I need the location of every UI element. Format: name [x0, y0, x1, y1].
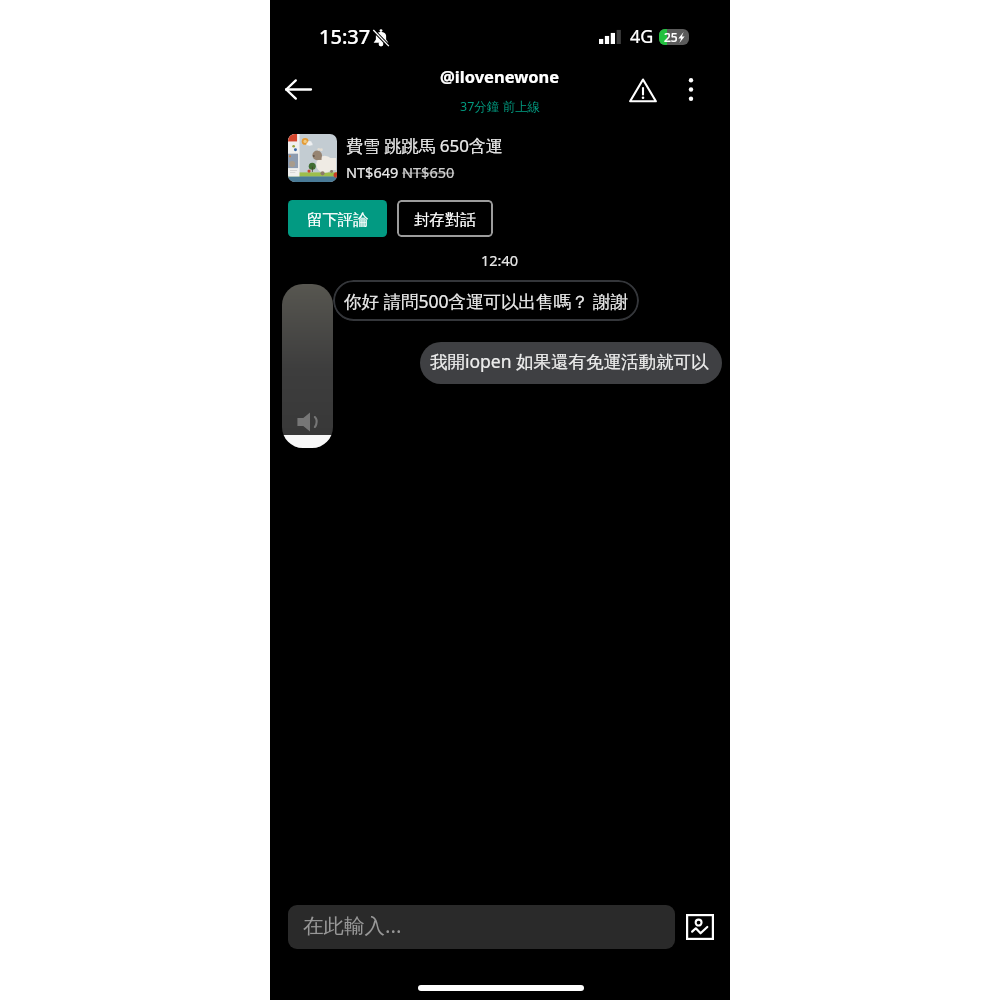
- button[interactable]: Volume: [282, 284, 333, 448]
- staticText: 費雪 跳跳馬 650含運: [346, 134, 504, 157]
- staticText: NT$649: [346, 162, 399, 182]
- staticText: 在此輸入...: [303, 911, 402, 939]
- button[interactable]: 你好 請問500含運可以出售嗎？ 謝謝: [333, 280, 639, 321]
- staticText: 留下評論: [307, 210, 369, 230]
- button[interactable]: More options: [672, 70, 710, 108]
- staticText: 我開iopen 如果還有免運活動就可以: [430, 349, 709, 373]
- staticText: 封存對話: [414, 210, 476, 230]
- button[interactable]: 費雪 跳跳馬 650含運: [288, 134, 504, 182]
- button[interactable]: 封存對話: [397, 200, 493, 237]
- staticText: 25: [664, 29, 678, 45]
- button[interactable]: Back: [277, 68, 320, 111]
- button[interactable]: 在此輸入...: [288, 905, 675, 949]
- button[interactable]: Send image: [678, 905, 722, 949]
- staticText: @ilovenewone: [440, 65, 560, 87]
- staticText: NT$650: [402, 162, 455, 182]
- staticText: 37分鐘 前上線: [460, 98, 541, 115]
- staticText: 12:40: [481, 250, 519, 270]
- button[interactable]: 留下評論: [288, 200, 387, 237]
- staticText: 15:37: [319, 23, 371, 50]
- staticText: 4G: [630, 24, 654, 49]
- staticText: 你好 請問500含運可以出售嗎？ 謝謝: [344, 289, 629, 313]
- button[interactable]: Report: [624, 71, 662, 109]
- button[interactable]: 我開iopen 如果還有免運活動就可以: [420, 342, 722, 384]
